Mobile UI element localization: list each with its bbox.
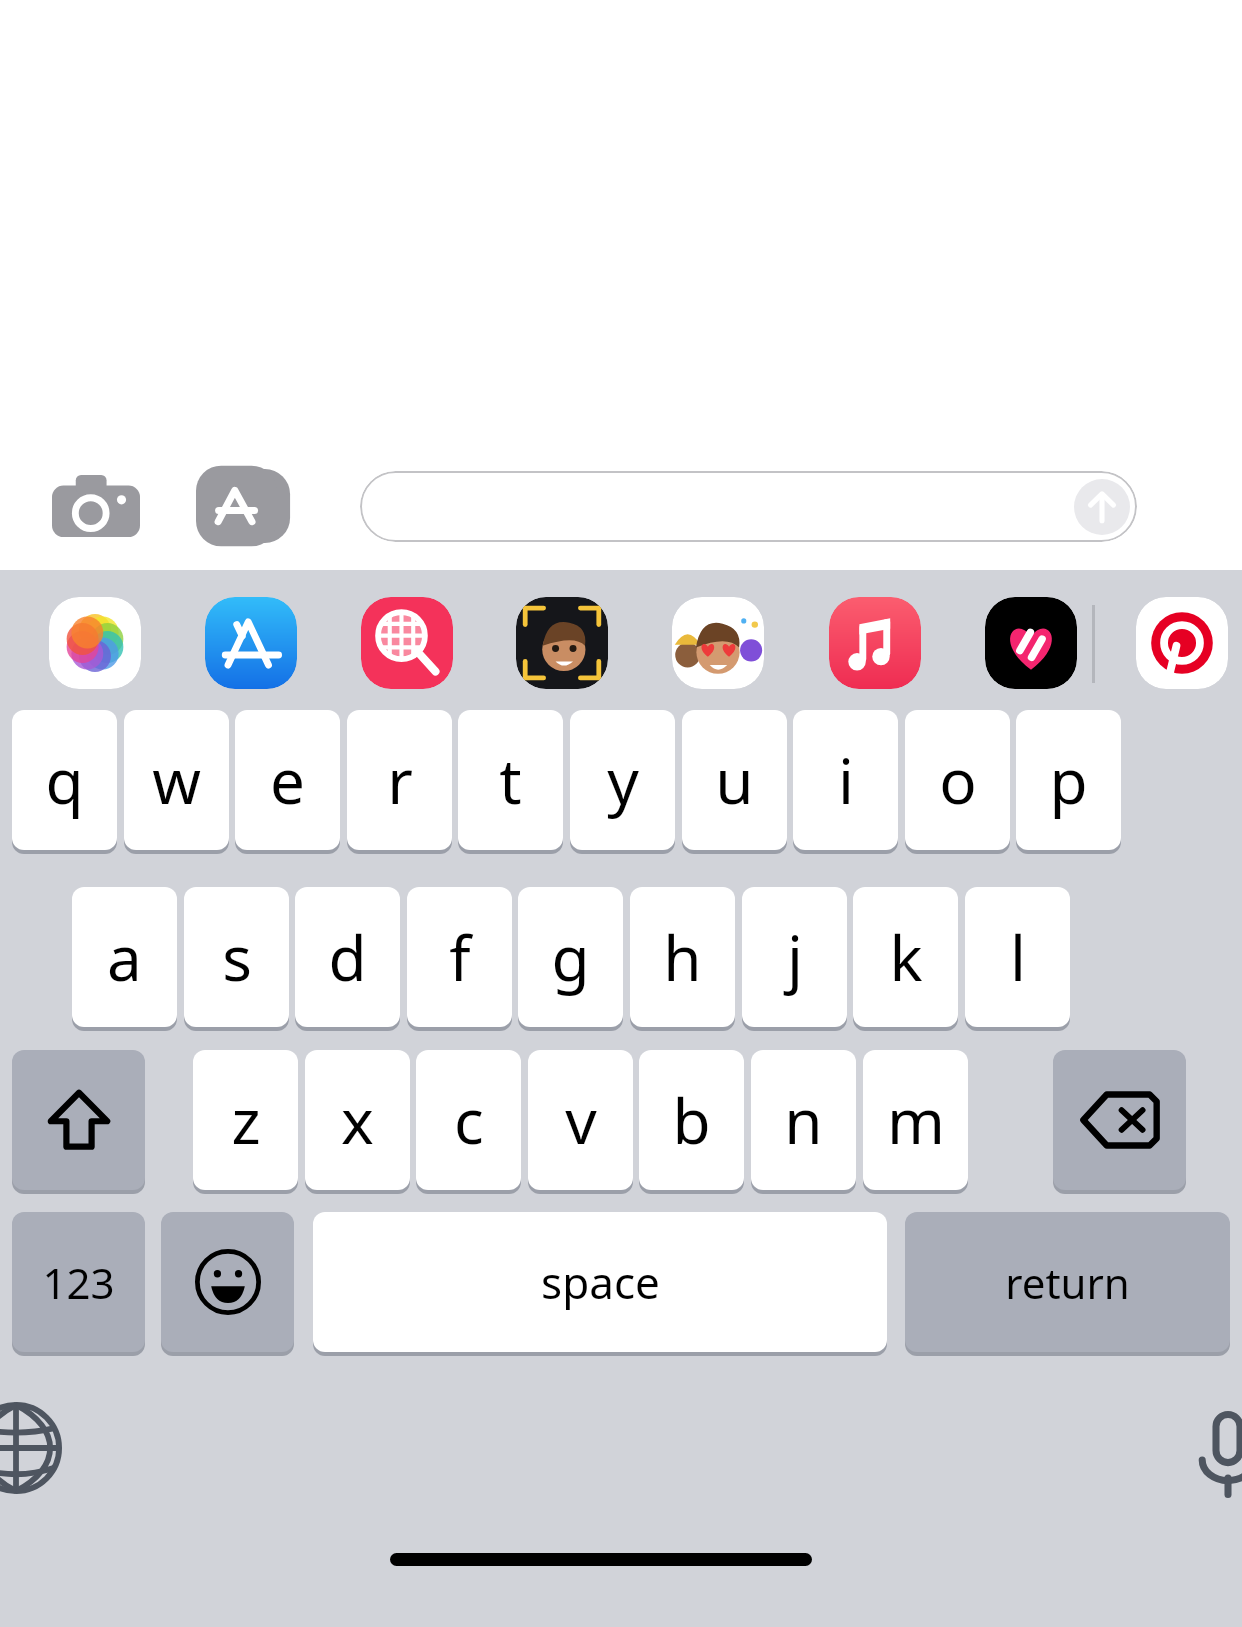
button[interactable]: Music: [829, 597, 921, 689]
staticText: i: [838, 738, 854, 822]
button[interactable]: e: [235, 710, 340, 854]
button[interactable]: g: [518, 887, 623, 1031]
staticText: y: [607, 738, 639, 822]
button[interactable]: Dictate: [1180, 1406, 1242, 1502]
staticText: h: [663, 915, 702, 999]
staticText: f: [449, 915, 471, 999]
button[interactable]: q: [12, 710, 117, 854]
button[interactable]: Camera: [44, 464, 148, 548]
button[interactable]: u: [682, 710, 787, 854]
button[interactable]: w: [124, 710, 229, 854]
button[interactable]: Memoji stickers: [672, 597, 764, 689]
button[interactable]: Image search: [361, 597, 453, 689]
button[interactable]: s: [184, 887, 289, 1031]
staticText: z: [231, 1078, 261, 1162]
button[interactable]: Backspace: [1053, 1050, 1186, 1194]
button[interactable]: n: [751, 1050, 856, 1194]
button[interactable]: return: [905, 1212, 1230, 1356]
button[interactable]: c: [416, 1050, 521, 1194]
button[interactable]: space: [313, 1212, 887, 1356]
button[interactable]: y: [570, 710, 675, 854]
button[interactable]: r: [347, 710, 452, 854]
button[interactable]: d: [295, 887, 400, 1031]
button[interactable]: Send: [360, 471, 1137, 542]
button[interactable]: Emoji keyboard: [161, 1212, 294, 1356]
staticText: r: [387, 738, 413, 822]
staticText: l: [1010, 915, 1026, 999]
button[interactable]: k: [853, 887, 958, 1031]
button[interactable]: Pinterest: [1136, 597, 1228, 689]
staticText: j: [787, 915, 803, 999]
button[interactable]: a: [72, 887, 177, 1031]
button[interactable]: Send: [1074, 479, 1130, 535]
button[interactable]: Apps: [196, 462, 312, 550]
staticText: t: [499, 738, 522, 822]
button[interactable]: h: [630, 887, 735, 1031]
button[interactable]: 123: [12, 1212, 145, 1356]
staticText: return: [1005, 1254, 1130, 1311]
button[interactable]: m: [863, 1050, 968, 1194]
staticText: v: [565, 1078, 597, 1162]
staticText: e: [270, 738, 305, 822]
staticText: m: [887, 1078, 945, 1162]
button[interactable]: z: [193, 1050, 298, 1194]
button[interactable]: Photos: [49, 597, 141, 689]
staticText: space: [541, 1252, 660, 1312]
button[interactable]: Shift: [12, 1050, 145, 1194]
staticText: b: [672, 1078, 711, 1162]
staticText: g: [551, 915, 590, 999]
staticText: p: [1049, 738, 1088, 822]
staticText: a: [107, 915, 142, 999]
button[interactable]: p: [1016, 710, 1121, 854]
staticText: u: [715, 738, 754, 822]
button[interactable]: Switch keyboard: [0, 1398, 66, 1498]
button[interactable]: f: [407, 887, 512, 1031]
staticText: c: [454, 1078, 484, 1162]
button[interactable]: Apple Music: [985, 597, 1077, 689]
button[interactable]: v: [528, 1050, 633, 1194]
staticText: w: [152, 738, 201, 822]
staticText: 123: [42, 1254, 115, 1311]
staticText: o: [939, 738, 977, 822]
button[interactable]: x: [305, 1050, 410, 1194]
staticText: n: [784, 1078, 823, 1162]
button[interactable]: Memoji: [516, 597, 608, 689]
staticText: x: [341, 1078, 374, 1162]
staticText: k: [889, 915, 923, 999]
button[interactable]: j: [742, 887, 847, 1031]
button[interactable]: o: [905, 710, 1010, 854]
staticText: q: [45, 738, 84, 822]
staticText: s: [222, 915, 252, 999]
button[interactable]: b: [639, 1050, 744, 1194]
button[interactable]: l: [965, 887, 1070, 1031]
button[interactable]: App Store: [205, 597, 297, 689]
button[interactable]: i: [793, 710, 898, 854]
staticText: d: [328, 915, 367, 999]
button[interactable]: t: [458, 710, 563, 854]
